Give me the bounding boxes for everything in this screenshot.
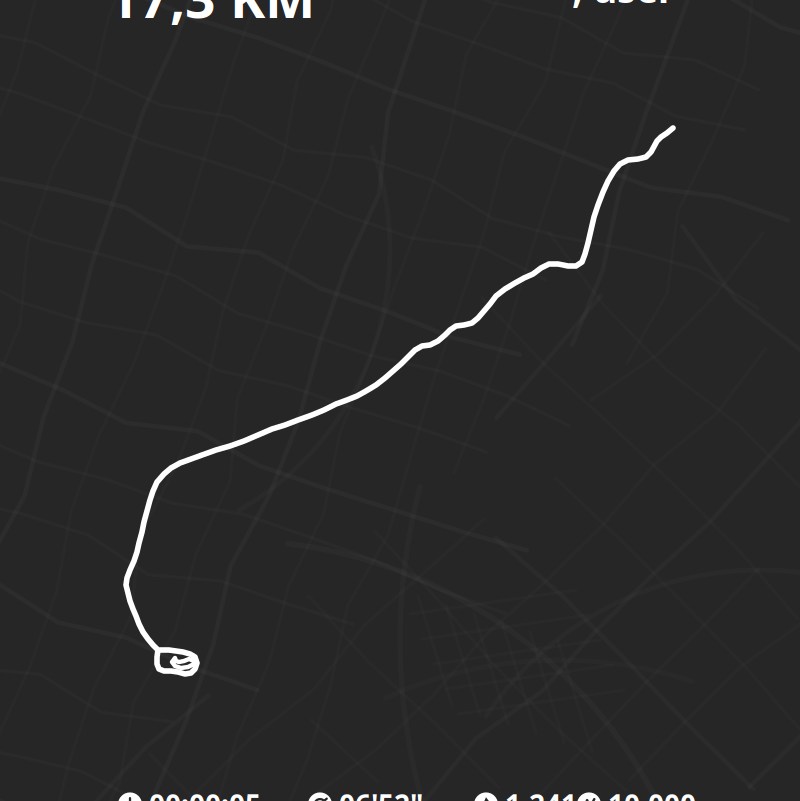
staticText: 17,3 KM — [108, 0, 315, 33]
staticText: 10.000 — [608, 786, 696, 801]
button[interactable]: 1.241 — [474, 786, 577, 801]
staticText: , user — [572, 0, 675, 13]
button[interactable]: , user — [572, 0, 675, 13]
button[interactable]: 17,3 KM — [108, 0, 315, 33]
button[interactable]: 06'52" — [308, 786, 423, 801]
staticText: 06'52" — [339, 786, 423, 801]
button[interactable]: 00:00:05 — [118, 786, 261, 801]
button[interactable]: 10.000 — [577, 786, 696, 801]
staticText: 1.241 — [505, 786, 577, 801]
staticText: 00:00:05 — [149, 786, 261, 801]
